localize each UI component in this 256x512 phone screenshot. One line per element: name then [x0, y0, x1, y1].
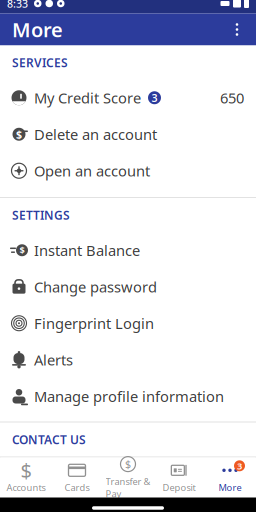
staticText: More [12, 16, 63, 43]
button[interactable]: My Credit Score [0, 79, 256, 116]
button[interactable]: $ [102, 457, 153, 497]
button[interactable]: More options [222, 13, 252, 45]
button[interactable]: Change password [0, 268, 256, 305]
staticText: SERVICES [12, 54, 68, 70]
button[interactable]: 3 [204, 457, 255, 497]
staticText: $ [16, 127, 22, 141]
staticText: Alerts [34, 350, 73, 369]
staticText: 3 [237, 460, 242, 472]
button[interactable]: Manage profile information [0, 378, 256, 414]
staticText: $ [20, 457, 31, 484]
staticText: Deposit [162, 481, 195, 494]
staticText: Instant Balance [34, 240, 140, 260]
staticText: Cards [64, 481, 89, 494]
button[interactable]: Cards [51, 457, 102, 497]
button[interactable]: Open an account [0, 152, 256, 189]
staticText: CONTACT US [12, 431, 86, 447]
staticText: SETTINGS [12, 207, 70, 223]
staticText: 3 [151, 91, 157, 105]
button[interactable]: $ [0, 116, 256, 152]
staticText: My Credit Score [34, 88, 141, 107]
button[interactable]: $ [0, 232, 256, 268]
staticText: $ [19, 244, 24, 256]
staticText: More [218, 481, 241, 494]
staticText: Accounts [6, 481, 45, 494]
button[interactable]: Alerts [0, 341, 256, 378]
staticText: Manage profile information [34, 386, 224, 406]
staticText: Fingerprint Login [34, 313, 154, 333]
button[interactable]: Fingerprint Login [0, 305, 256, 341]
staticText: Delete an account [34, 124, 157, 144]
staticText: Open an account [34, 161, 150, 180]
staticText: $ [125, 457, 131, 471]
button[interactable]: $ [0, 457, 51, 497]
staticText: Change password [34, 277, 157, 296]
button[interactable]: Deposit [153, 457, 204, 497]
staticText: Transfer & Pay [105, 475, 150, 500]
staticText: 650 [220, 88, 244, 107]
staticText: 8:33 [7, 0, 28, 11]
